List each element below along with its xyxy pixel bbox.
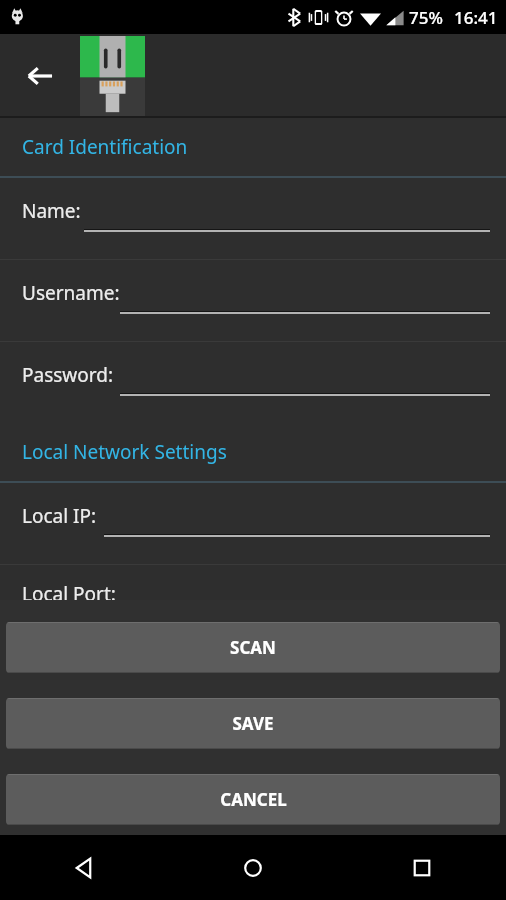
staticText: Local Port:: [22, 581, 116, 600]
staticText: SCAN: [230, 636, 276, 659]
staticText: CANCEL: [220, 788, 287, 811]
button[interactable]: Name:: [0, 178, 506, 259]
staticText: Username:: [22, 280, 120, 306]
button[interactable]: Recent apps: [337, 835, 506, 900]
button[interactable]: Username:: [0, 260, 506, 341]
staticText: Password:: [22, 362, 114, 388]
button[interactable]: Local IP:: [0, 483, 506, 564]
button[interactable]: Password:: [0, 342, 506, 423]
button[interactable]: Navigate up: [14, 50, 66, 102]
staticText: Card Identification: [22, 134, 188, 160]
button[interactable]: Home: [168, 835, 337, 900]
staticText: Local IP:: [22, 503, 97, 529]
button[interactable]: SAVE: [6, 698, 500, 749]
staticText: 75%: [409, 6, 443, 29]
button[interactable]: CANCEL: [6, 774, 500, 825]
staticText: Local Network Settings: [22, 439, 227, 465]
staticText: SAVE: [232, 712, 274, 735]
staticText: 16:41: [454, 6, 498, 29]
button[interactable]: SCAN: [6, 622, 500, 673]
staticText: Name:: [22, 198, 81, 224]
button[interactable]: Back: [0, 835, 168, 900]
